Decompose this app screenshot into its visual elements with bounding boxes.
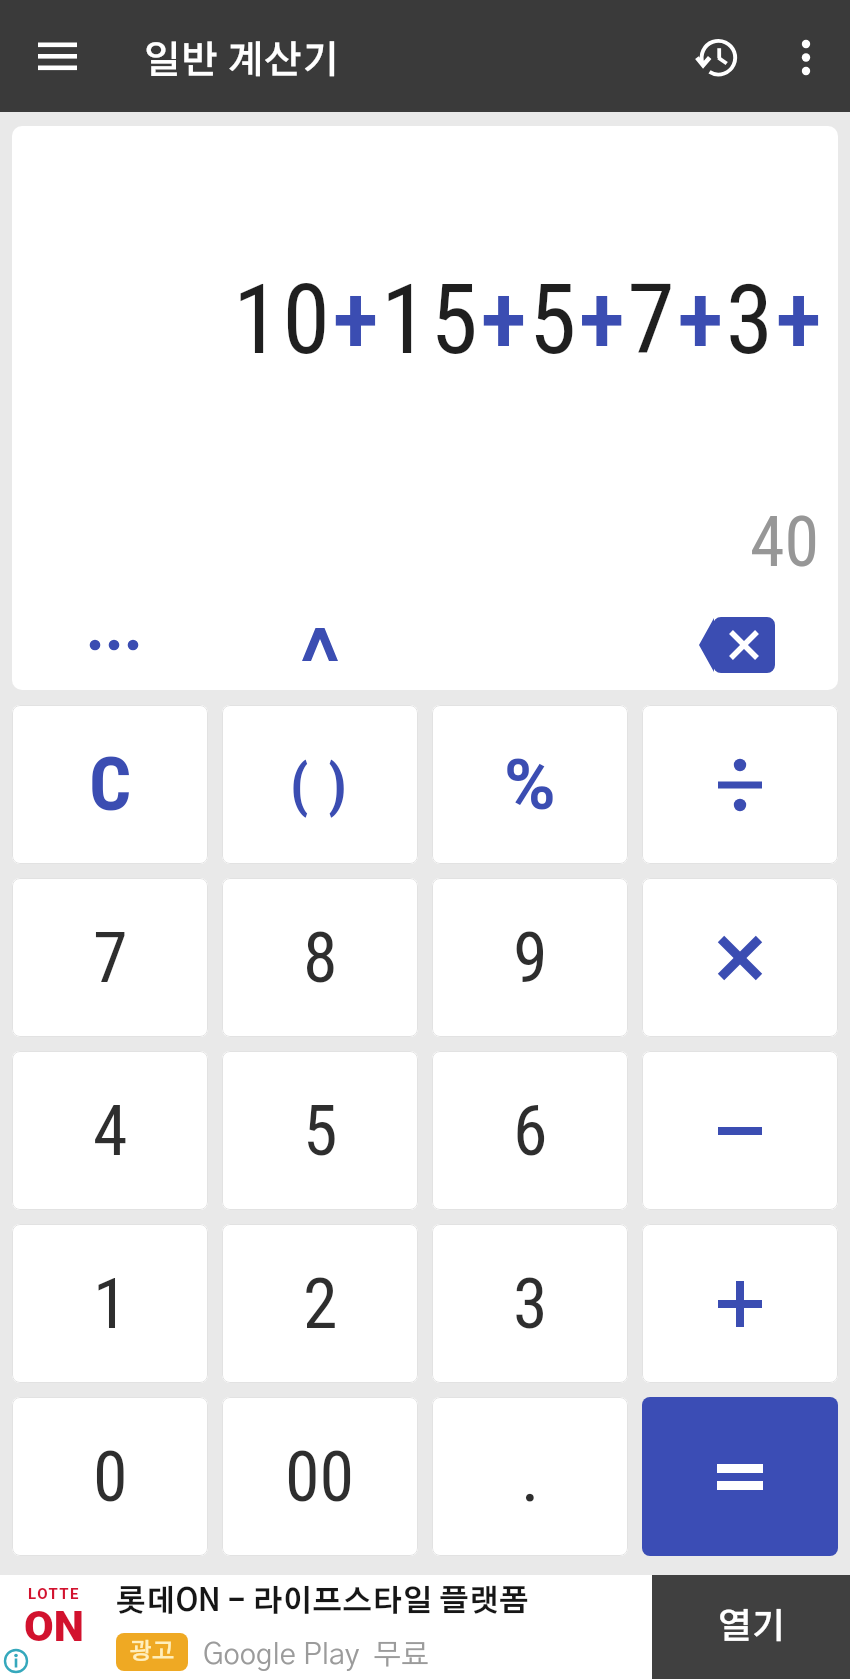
staticText: 롯데ON - 라이프스타일 플랫폼 (116, 1587, 529, 1617)
staticText: 1 (93, 1263, 128, 1345)
button[interactable] (782, 29, 830, 77)
button[interactable] (642, 1224, 838, 1383)
button[interactable] (276, 613, 364, 677)
staticText: 5 (303, 1090, 338, 1172)
staticText: . (521, 1436, 540, 1518)
staticText: 일반 계산기 (143, 43, 340, 81)
staticText: 0 (93, 1436, 128, 1518)
staticText: Google Play 무료 (203, 1641, 430, 1670)
button[interactable] (642, 705, 838, 864)
button[interactable] (30, 29, 86, 85)
button[interactable] (642, 878, 838, 1037)
staticText: 2 (303, 1263, 338, 1345)
staticText: 3 (513, 1263, 548, 1345)
button[interactable] (63, 613, 165, 677)
button[interactable] (642, 1397, 838, 1556)
button[interactable]: 9 (432, 878, 628, 1037)
staticText: % (504, 744, 556, 826)
button[interactable]: C (12, 705, 208, 864)
staticText: C (89, 741, 132, 828)
button[interactable]: LOTTE (0, 1575, 850, 1679)
button[interactable]: 00 (222, 1397, 418, 1556)
button[interactable] (689, 29, 745, 85)
button[interactable]: 6 (432, 1051, 628, 1210)
staticText: 9 (513, 917, 548, 999)
staticText: 10+15+5+7+3+ (233, 264, 825, 377)
button[interactable]: % (432, 705, 628, 864)
staticText: 열기 (717, 1610, 786, 1645)
button[interactable] (689, 607, 785, 683)
staticText: 7 (93, 917, 128, 999)
staticText: 40 (750, 501, 820, 581)
button[interactable] (642, 1051, 838, 1210)
button[interactable]: 1 (12, 1224, 208, 1383)
button[interactable]: 2 (222, 1224, 418, 1383)
button[interactable]: 열기 (652, 1575, 850, 1679)
button[interactable]: 7 (12, 878, 208, 1037)
staticText: ON (24, 1601, 84, 1647)
staticText: ( ) (290, 751, 350, 819)
button[interactable]: 4 (12, 1051, 208, 1210)
button[interactable]: . (432, 1397, 628, 1556)
button[interactable]: 5 (222, 1051, 418, 1210)
staticText: 6 (513, 1090, 548, 1172)
button[interactable]: 0 (12, 1397, 208, 1556)
staticText: 4 (93, 1090, 128, 1172)
button[interactable]: 8 (222, 878, 418, 1037)
button[interactable]: ( ) (222, 705, 418, 864)
staticText: 광고 (129, 1641, 175, 1664)
staticText: 00 (285, 1436, 355, 1518)
button[interactable]: 3 (432, 1224, 628, 1383)
staticText: 8 (303, 917, 338, 999)
staticText: LOTTE (28, 1585, 81, 1603)
